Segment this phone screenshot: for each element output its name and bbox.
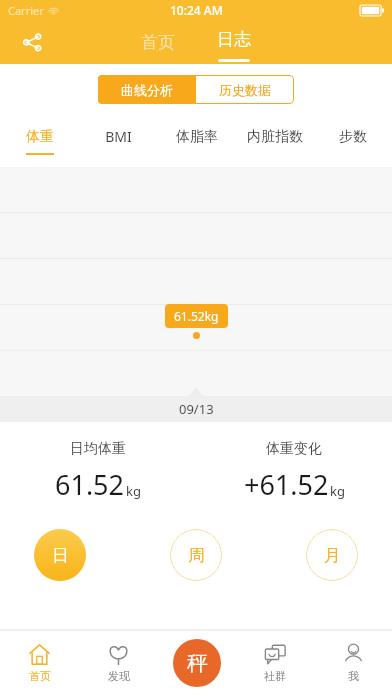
staticText: kg [330, 482, 345, 500]
button[interactable]: 发现 [79, 630, 158, 696]
staticText: 61.52 [55, 466, 125, 503]
staticText: 秤 [187, 650, 208, 676]
staticText: 社群 [264, 669, 286, 683]
staticText: 周 [188, 545, 205, 566]
staticText: 步数 [339, 128, 367, 146]
button[interactable]: 体脂率 [158, 115, 236, 167]
staticText: 月 [324, 545, 341, 566]
button[interactable]: 日 [34, 529, 86, 581]
staticText: 发现 [108, 669, 130, 683]
staticText: 体脂率 [176, 128, 218, 146]
staticText: 首页 [29, 669, 51, 683]
button[interactable]: 曲线分析 [98, 75, 196, 104]
staticText: +61.52 [244, 466, 329, 503]
button[interactable]: 我 [314, 630, 392, 696]
button[interactable]: 首页 [127, 26, 189, 59]
staticText: BMI [105, 127, 132, 146]
button[interactable]: 社群 [236, 630, 314, 696]
button[interactable]: Share [12, 22, 52, 62]
button[interactable]: 日志 [203, 23, 265, 62]
staticText: 内脏指数 [247, 128, 303, 146]
button[interactable]: 周 [170, 529, 222, 581]
staticText: 日均体重 [70, 440, 126, 458]
staticText: 历史数据 [219, 82, 271, 98]
staticText: 日志 [217, 29, 251, 50]
staticText: 10:24 AM [170, 2, 223, 18]
button[interactable]: 首页 [0, 630, 79, 696]
staticText: 首页 [141, 32, 175, 53]
staticText: 体重变化 [266, 440, 322, 458]
button[interactable]: 步数 [314, 115, 392, 167]
button[interactable]: BMI [79, 115, 158, 167]
staticText: kg [126, 482, 141, 500]
staticText: 我 [348, 669, 359, 683]
staticText: 体重 [26, 128, 54, 146]
button[interactable]: 体重 [0, 115, 79, 167]
staticText: 61.52kg [174, 308, 219, 324]
staticText: 曲线分析 [121, 82, 173, 98]
button[interactable]: 历史数据 [196, 75, 294, 104]
button[interactable]: 秤 [173, 639, 221, 687]
button[interactable]: 内脏指数 [236, 115, 314, 167]
staticText: 09/13 [179, 400, 214, 418]
button[interactable]: 月 [306, 529, 358, 581]
staticText: Carrier [8, 3, 44, 18]
staticText: 日 [52, 545, 69, 566]
